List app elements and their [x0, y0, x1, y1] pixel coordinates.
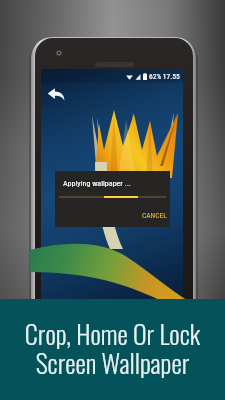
button[interactable]: Back	[43, 82, 69, 108]
button[interactable]: CANCEL	[142, 211, 167, 220]
staticText: Crop, Home Or Lock Screen Wallpaper	[0, 314, 225, 382]
staticText: 62% 17.55	[149, 72, 180, 81]
staticText: CANCEL	[142, 211, 167, 220]
staticText: Applying wallpaper ...	[63, 179, 131, 188]
